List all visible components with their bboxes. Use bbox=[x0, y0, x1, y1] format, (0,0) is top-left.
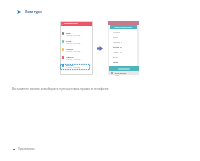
button[interactable]: Отель 4* bbox=[109, 45, 137, 50]
staticText: Цена bbox=[113, 61, 119, 64]
button[interactable]: Берген bbox=[60, 64, 93, 72]
staticText: Вы можете искать и выбирать путешествия … bbox=[12, 87, 109, 91]
staticText: Виза bbox=[113, 56, 118, 59]
button[interactable]: Даты bbox=[109, 35, 137, 40]
staticText: Ваш выбор bbox=[115, 72, 126, 75]
button[interactable]: Back bbox=[60, 21, 93, 26]
button[interactable] bbox=[118, 68, 130, 70]
button[interactable]: Осло bbox=[60, 40, 93, 48]
staticText: Афины bbox=[66, 56, 74, 59]
staticText: готов bbox=[115, 74, 120, 76]
staticText: Новое путешествие bbox=[114, 26, 133, 29]
other: Next bbox=[97, 46, 103, 51]
staticText: 6 дней, 2 города bbox=[66, 58, 81, 60]
button[interactable]: Цена bbox=[109, 60, 137, 65]
button[interactable]: Оплата bbox=[109, 65, 137, 67]
button[interactable]: Ваш выбор bbox=[109, 71, 139, 75]
button[interactable]: Logo bbox=[17, 10, 42, 14]
staticText: 9 дней, 4 города bbox=[66, 50, 81, 52]
button[interactable]: Июль, 10 bbox=[109, 50, 137, 55]
staticText: 7 дней, 3 города bbox=[66, 34, 81, 36]
staticText: 5 дней, 2 города bbox=[66, 42, 81, 44]
staticText: Оплата bbox=[113, 65, 121, 67]
staticText: Города, 3 bbox=[113, 41, 123, 44]
button[interactable]: Афины bbox=[60, 56, 93, 64]
staticText: Приложение bbox=[18, 147, 35, 151]
staticText: Берген bbox=[66, 64, 74, 67]
button[interactable]: Новое путешествие bbox=[110, 25, 137, 29]
staticText: Страна bbox=[113, 31, 120, 34]
staticText: Лови туры bbox=[25, 10, 42, 14]
button[interactable]: Рим bbox=[60, 32, 93, 40]
staticText: Рим bbox=[66, 32, 71, 35]
other: Selected trip bbox=[60, 64, 90, 70]
staticText: Даты bbox=[113, 36, 118, 39]
button[interactable]: Города, 3 bbox=[109, 40, 137, 45]
button[interactable]: Виза bbox=[109, 55, 137, 60]
button[interactable]: Приложение bbox=[13, 147, 35, 151]
staticText: Ницца bbox=[66, 48, 73, 51]
button[interactable]: Ницца bbox=[60, 48, 93, 56]
staticText: Осло bbox=[66, 40, 72, 43]
button[interactable]: Страна bbox=[109, 30, 137, 35]
staticText: Путешествия bbox=[64, 22, 78, 25]
staticText: Отель 4* bbox=[113, 46, 122, 49]
staticText: Июль, 10 bbox=[113, 51, 122, 54]
staticText: 8 дней, 3 города bbox=[66, 66, 81, 68]
other: Logo bbox=[17, 10, 21, 14]
